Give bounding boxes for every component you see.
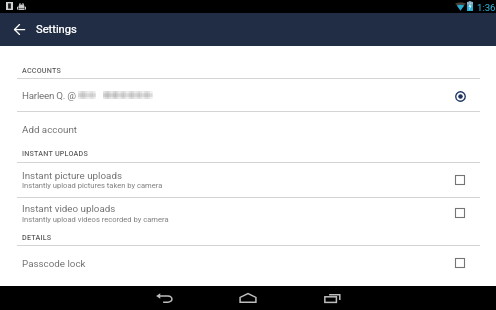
button[interactable]: Instant video uploads bbox=[0, 198, 496, 230]
staticText: Instant video uploads bbox=[22, 203, 116, 214]
staticText: Harleen Q. @ bbox=[22, 90, 76, 101]
button[interactable]: Harleen Q. @ bbox=[0, 79, 496, 111]
button[interactable]: Instant picture uploads bbox=[0, 163, 496, 196]
button[interactable]: Back bbox=[122, 286, 206, 310]
staticText: ACCOUNTS bbox=[22, 66, 62, 74]
staticText: Instant picture uploads bbox=[22, 170, 122, 181]
staticText: Passcode lock bbox=[22, 258, 86, 269]
staticText: Settings bbox=[36, 23, 77, 36]
staticText: 1:36 bbox=[477, 2, 496, 13]
button[interactable]: Add account bbox=[0, 112, 496, 146]
staticText: Instantly upload videos recorded by came… bbox=[22, 215, 169, 224]
staticText: INSTANT UPLOADS bbox=[22, 149, 88, 157]
staticText: Add account bbox=[22, 124, 78, 135]
button[interactable]: Home bbox=[206, 286, 290, 310]
button[interactable]: Passcode lock bbox=[0, 246, 496, 280]
staticText: Instantly upload pictures taken by camer… bbox=[22, 181, 163, 190]
staticText: DETAILS bbox=[22, 233, 52, 241]
button[interactable]: Navigate up bbox=[2, 13, 36, 46]
button[interactable]: Recent apps bbox=[290, 286, 374, 310]
